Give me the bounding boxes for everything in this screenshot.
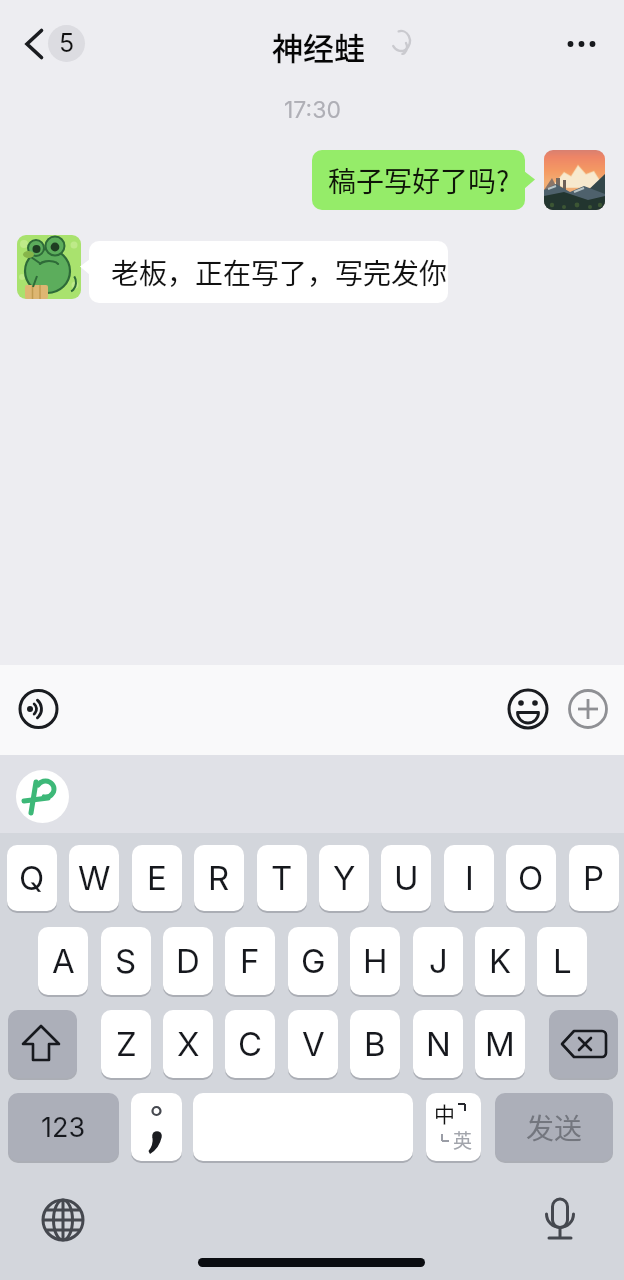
button[interactable]: W xyxy=(69,845,119,911)
staticText: 神经蛙 xyxy=(272,24,365,64)
staticText: 17:30 xyxy=(284,96,341,124)
button[interactable] xyxy=(532,1192,588,1248)
staticText: A xyxy=(52,941,75,981)
button[interactable] xyxy=(14,684,64,734)
staticText: E xyxy=(147,858,167,898)
button[interactable] xyxy=(36,1192,92,1248)
staticText: M xyxy=(485,1024,515,1064)
staticText: L xyxy=(553,941,572,981)
button[interactable]: T xyxy=(257,845,307,911)
button[interactable]: U xyxy=(381,845,431,911)
button[interactable]: Y xyxy=(319,845,369,911)
button[interactable] xyxy=(312,150,525,210)
staticText: X xyxy=(177,1024,200,1064)
button[interactable]: D xyxy=(163,927,213,995)
button[interactable] xyxy=(426,1093,481,1161)
button[interactable]: H xyxy=(350,927,400,995)
button[interactable]: O xyxy=(506,845,556,911)
button[interactable] xyxy=(549,1010,618,1078)
staticText: P xyxy=(583,858,605,898)
staticText: J xyxy=(429,941,448,981)
staticText: 5 xyxy=(59,28,75,58)
staticText: H xyxy=(363,941,388,981)
button[interactable]: G xyxy=(288,927,338,995)
staticText: 发送 xyxy=(526,1107,583,1148)
staticText: O xyxy=(518,858,544,898)
staticText: F xyxy=(240,941,260,981)
staticText: T xyxy=(271,858,293,898)
staticText: 中 xyxy=(434,1098,455,1126)
staticText: W xyxy=(78,858,111,898)
staticText: Y xyxy=(333,858,356,898)
button[interactable]: 123 xyxy=(8,1093,119,1161)
button[interactable] xyxy=(14,20,94,68)
staticText: K xyxy=(489,941,512,981)
button[interactable]: B xyxy=(350,1010,400,1078)
button[interactable]: A xyxy=(38,927,88,995)
button[interactable] xyxy=(8,1010,77,1078)
staticText: 英 xyxy=(453,1126,473,1154)
button[interactable] xyxy=(16,770,69,823)
button[interactable]: I xyxy=(444,845,494,911)
button[interactable] xyxy=(193,1093,413,1161)
staticText: N xyxy=(426,1024,451,1064)
staticText: G xyxy=(301,941,326,981)
button[interactable] xyxy=(504,684,552,734)
button[interactable]: X xyxy=(163,1010,213,1078)
staticText: Q xyxy=(19,858,45,898)
button[interactable]: F xyxy=(225,927,275,995)
button[interactable]: M xyxy=(475,1010,525,1078)
button[interactable] xyxy=(89,241,448,303)
button[interactable]: P xyxy=(569,845,619,911)
staticText: V xyxy=(302,1024,325,1064)
button[interactable]: V xyxy=(288,1010,338,1078)
staticText: I xyxy=(465,858,474,898)
button[interactable]: K xyxy=(475,927,525,995)
button[interactable]: C xyxy=(225,1010,275,1078)
button[interactable]: Q xyxy=(7,845,57,911)
staticText: 123 xyxy=(41,1111,86,1144)
button[interactable]: J xyxy=(413,927,463,995)
staticText: R xyxy=(208,858,230,898)
button[interactable]: 发送 xyxy=(495,1093,613,1161)
staticText: U xyxy=(394,858,419,898)
staticText: D xyxy=(176,941,200,981)
button[interactable]: S xyxy=(101,927,151,995)
button[interactable] xyxy=(552,20,612,68)
staticText: B xyxy=(364,1024,386,1064)
staticText: C xyxy=(238,1024,263,1064)
staticText: 老板，正在写了，写完发你 xyxy=(111,252,448,293)
button[interactable] xyxy=(131,1093,182,1161)
button[interactable]: N xyxy=(413,1010,463,1078)
button[interactable]: L xyxy=(537,927,587,995)
button[interactable] xyxy=(564,684,612,734)
staticText: Z xyxy=(116,1024,137,1064)
button[interactable]: R xyxy=(194,845,244,911)
button[interactable]: E xyxy=(132,845,182,911)
button[interactable]: Z xyxy=(101,1010,151,1078)
staticText: 稿子写好了吗? xyxy=(328,160,510,201)
staticText: S xyxy=(115,941,137,981)
